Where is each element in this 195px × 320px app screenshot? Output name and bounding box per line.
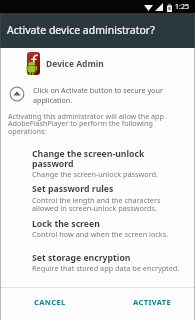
staticText: Set storage encryption <box>32 252 131 264</box>
staticText: Activate device administrator? <box>7 23 155 37</box>
staticText: Device Admin <box>46 58 104 70</box>
staticText: Require that stored app data be encrypte… <box>32 263 180 273</box>
staticText: Set password rules <box>32 183 114 195</box>
staticText: Lock the screen <box>32 218 100 230</box>
staticText: Change the screen-unlock password. <box>32 169 158 179</box>
staticText: 1:25 <box>175 2 189 12</box>
staticText: Activating this administrator will allow… <box>8 111 164 137</box>
staticText: CANCEL <box>34 297 66 307</box>
staticText: ACTIVATE <box>133 297 172 307</box>
staticText: Change the screen-unlock password <box>32 148 145 169</box>
button[interactable]: ACTIVATE <box>120 290 184 314</box>
button[interactable]: CANCEL <box>18 290 82 314</box>
staticText: Click on Activate button to secure your … <box>33 85 163 105</box>
staticText: Control how and when the screen locks. <box>32 229 169 239</box>
staticText: Control the length and the characters al… <box>32 195 161 214</box>
